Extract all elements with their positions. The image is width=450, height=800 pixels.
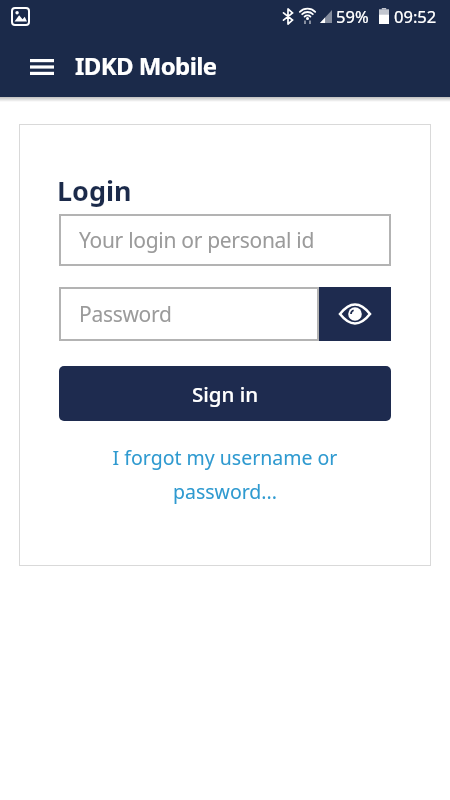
button[interactable]: Password [59,287,319,341]
button[interactable]: I forgot my username or password... [59,444,391,504]
staticText: I forgot my username or password... [59,444,391,504]
button[interactable]: Sign in [59,366,391,421]
staticText: Sign in [192,380,259,408]
button[interactable] [20,43,64,87]
staticText: Login [57,172,132,209]
staticText: 59% [336,5,369,27]
button[interactable] [319,287,391,341]
staticText: 09:52 [394,5,437,27]
staticText: Password [79,300,172,329]
staticText: Your login or personal id [79,226,315,255]
staticText: IDKD Mobile [75,49,217,82]
button[interactable]: Your login or personal id [59,214,391,266]
